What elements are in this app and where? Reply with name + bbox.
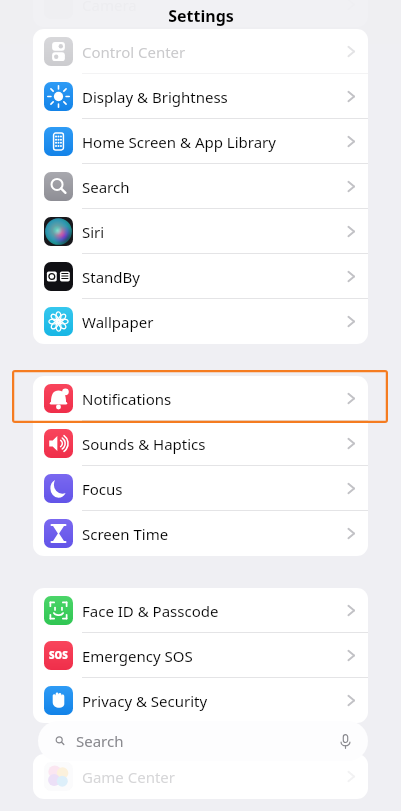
button[interactable]: SOS	[33, 633, 368, 678]
staticText: Game Center	[82, 767, 346, 787]
button[interactable]: Wallpaper	[33, 299, 368, 344]
staticText: Notifications	[82, 389, 346, 409]
staticText: SOS	[49, 649, 68, 662]
staticText: Search	[76, 731, 337, 751]
staticText: Display & Brightness	[82, 87, 346, 107]
button[interactable]: Focus	[33, 466, 368, 511]
staticText: Camera	[82, 0, 346, 15]
staticText: Search	[82, 177, 346, 197]
staticText: Screen Time	[82, 524, 346, 544]
staticText: Face ID & Passcode	[82, 601, 346, 621]
staticText: Siri	[82, 222, 346, 242]
button[interactable]: Search	[38, 721, 368, 761]
staticText: Privacy & Security	[82, 691, 346, 711]
button[interactable]: Voice search	[337, 733, 354, 750]
staticText: Wallpaper	[82, 312, 346, 332]
button[interactable]: Privacy & Security	[33, 678, 368, 723]
staticText: Settings	[168, 5, 234, 27]
button[interactable]: Notifications	[33, 376, 368, 421]
staticText: Emergency SOS	[82, 646, 346, 666]
button[interactable]: Home Screen & App Library	[33, 119, 368, 164]
button[interactable]: Display & Brightness	[33, 74, 368, 119]
button[interactable]: Siri	[33, 209, 368, 254]
staticText: Control Center	[82, 42, 346, 62]
button[interactable]: Face ID & Passcode	[33, 588, 368, 633]
button[interactable]: StandBy	[33, 254, 368, 299]
button[interactable]: Screen Time	[33, 511, 368, 556]
button[interactable]: Sounds & Haptics	[33, 421, 368, 466]
staticText: Focus	[82, 479, 346, 499]
staticText: Home Screen & App Library	[82, 132, 346, 152]
staticText: StandBy	[82, 267, 346, 287]
button[interactable]: Control Center	[33, 29, 368, 74]
button[interactable]: Search	[33, 164, 368, 209]
staticText: Sounds & Haptics	[82, 434, 346, 454]
